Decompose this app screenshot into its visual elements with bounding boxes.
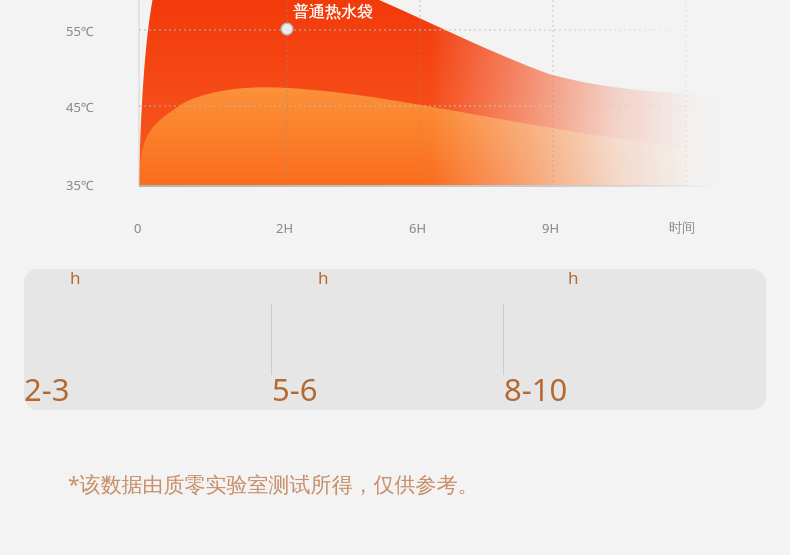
staticText: 45℃ <box>66 98 94 116</box>
staticText: 2-3 <box>24 368 70 410</box>
staticText: 2H <box>276 219 294 237</box>
button[interactable]: 5-6 <box>272 269 503 410</box>
staticText: h <box>318 269 329 289</box>
staticText: h <box>568 269 579 289</box>
staticText: 35℃ <box>66 176 94 194</box>
staticText: 5-6 <box>272 368 318 410</box>
staticText: h <box>70 269 81 289</box>
staticText: 时间 <box>669 219 695 235</box>
button[interactable]: 8-10 <box>504 269 766 410</box>
staticText: 6H <box>409 219 427 237</box>
staticText: 0 <box>134 219 142 237</box>
staticText: 55℃ <box>66 22 94 40</box>
staticText: 9H <box>542 219 560 237</box>
button[interactable]: 2-3 <box>24 269 271 410</box>
staticText: 普通热水袋 <box>293 2 373 22</box>
staticText: 8-10 <box>504 368 568 410</box>
staticText: *该数据由质零实验室测试所得，仅供参考。 <box>68 470 479 499</box>
